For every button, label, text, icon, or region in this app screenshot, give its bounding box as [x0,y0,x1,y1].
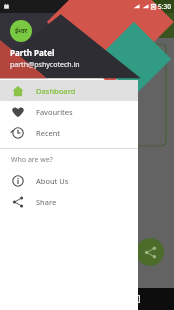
staticText: ईश्वर [15,27,28,35]
button[interactable]: Recent [0,122,138,143]
button[interactable]: Recents [125,288,147,310]
button[interactable]: Share [136,238,164,266]
button[interactable]: Dashboard [0,80,138,101]
button[interactable]: ईश्वर [0,13,138,77]
staticText: About Us [36,176,69,186]
button[interactable]: Share [0,191,138,212]
button[interactable]: Favourites [0,101,138,122]
staticText: Recent [36,128,61,138]
staticText: Favourites [36,107,73,117]
staticText: Share [36,197,57,207]
staticText: Dashboard [36,86,76,96]
staticText: Parth Patel [10,47,55,58]
staticText: 5:30 [158,2,171,11]
staticText: parth@pshycotech.in [10,60,80,70]
staticText: Who are we? [11,155,53,165]
button[interactable]: About Us [0,170,138,191]
